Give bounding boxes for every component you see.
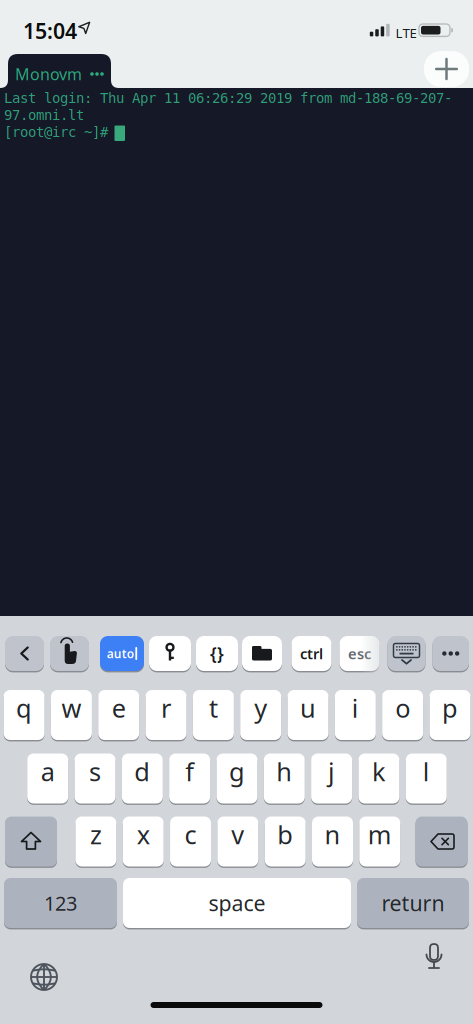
button[interactable]: t [193, 690, 234, 740]
button[interactable]: q [4, 690, 45, 740]
button[interactable]: c [170, 816, 211, 866]
button[interactable]: 123 [4, 878, 117, 928]
staticText: d [134, 755, 150, 788]
staticText: auto [107, 645, 134, 661]
staticText: c [184, 818, 196, 851]
button[interactable]: space [123, 878, 351, 928]
staticText: s [89, 755, 101, 788]
button[interactable]: m [359, 816, 400, 866]
button[interactable]: k [358, 753, 399, 803]
button[interactable]: v [217, 816, 258, 866]
button[interactable]: return [357, 878, 469, 928]
button[interactable]: Monovm [0, 54, 120, 88]
staticText: e [112, 691, 126, 725]
staticText: ctrl [300, 644, 323, 663]
button[interactable]: f [169, 753, 210, 803]
button[interactable]: More [432, 636, 469, 671]
button[interactable]: z [75, 816, 116, 866]
button[interactable]: l [406, 753, 447, 803]
button[interactable]: esc [339, 636, 379, 671]
staticText: m [368, 818, 392, 851]
button[interactable]: Keys [149, 636, 191, 671]
button[interactable]: g [216, 753, 257, 803]
staticText: q [16, 691, 32, 725]
staticText: x [137, 818, 150, 851]
button[interactable]: Next keyboard [30, 963, 58, 991]
button[interactable]: x [123, 816, 164, 866]
staticText: r [161, 691, 171, 725]
staticText: k [372, 755, 386, 788]
button[interactable]: e [98, 690, 139, 740]
button[interactable]: {} [196, 636, 238, 671]
staticText: j [328, 755, 335, 788]
staticText: space [208, 889, 265, 917]
button[interactable]: b [265, 816, 306, 866]
button[interactable]: u [287, 690, 328, 740]
button[interactable]: p [429, 690, 470, 740]
staticText: esc [348, 644, 371, 663]
staticText: return [381, 889, 444, 917]
staticText: i [352, 691, 359, 725]
button[interactable]: n [312, 816, 353, 866]
button[interactable]: h [264, 753, 305, 803]
staticText: 15:04 [23, 16, 77, 45]
button[interactable]: s [74, 753, 115, 803]
button[interactable]: o [382, 690, 423, 740]
button[interactable]: Snippets [242, 636, 282, 671]
staticText: Last login: Thu Apr 11 06:26:29 2019 fro… [4, 90, 452, 106]
staticText: b [277, 818, 293, 851]
button[interactable]: y [240, 690, 281, 740]
staticText: LTE [395, 24, 416, 42]
staticText: g [229, 755, 245, 788]
staticText: [root@irc ~]# [4, 124, 108, 140]
staticText: h [276, 755, 292, 788]
staticText: n [324, 818, 340, 851]
staticText: 97.omni.lt [4, 107, 84, 123]
button[interactable]: Dictate [423, 944, 444, 971]
staticText: {} [210, 642, 224, 665]
button[interactable]: Tap gestures [50, 636, 89, 671]
staticText: v [231, 818, 244, 851]
button[interactable]: auto [100, 636, 144, 671]
staticText: f [185, 755, 194, 788]
button[interactable]: i [335, 690, 376, 740]
button[interactable]: a [27, 753, 68, 803]
staticText: u [300, 691, 316, 725]
staticText: Monovm [15, 63, 82, 85]
button[interactable]: New terminal [424, 51, 469, 87]
staticText: z [90, 818, 102, 851]
staticText: t [209, 691, 218, 725]
button[interactable]: Back [5, 636, 44, 671]
button[interactable]: r [146, 690, 187, 740]
button[interactable]: Delete [415, 816, 467, 866]
staticText: y [254, 691, 267, 725]
staticText: w [61, 691, 81, 725]
staticText: 123 [44, 890, 77, 916]
button[interactable]: j [311, 753, 352, 803]
button[interactable]: w [51, 690, 92, 740]
button[interactable]: Dismiss keyboard [387, 636, 425, 671]
button[interactable]: d [122, 753, 163, 803]
staticText: p [442, 691, 458, 725]
button[interactable]: ctrl [291, 636, 331, 671]
staticText: o [395, 691, 410, 725]
button[interactable]: Shift [5, 816, 57, 866]
staticText: a [41, 755, 55, 788]
staticText: l [423, 755, 430, 788]
